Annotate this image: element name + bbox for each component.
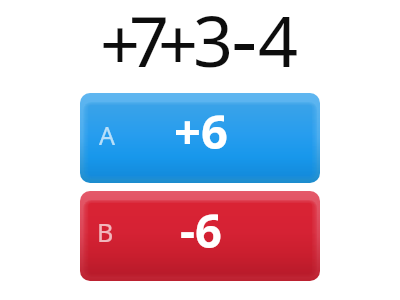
staticText: +6 <box>174 99 228 163</box>
staticText: 7 <box>129 0 170 85</box>
button[interactable]: A <box>80 93 320 183</box>
staticText: A <box>99 118 115 152</box>
staticText: + <box>158 0 199 88</box>
staticText: 3 <box>193 0 234 85</box>
staticText: B <box>97 215 114 249</box>
staticText: + <box>100 0 141 88</box>
staticText: 4 <box>258 0 299 85</box>
button[interactable]: B <box>80 191 320 281</box>
staticText: -6 <box>180 198 222 262</box>
